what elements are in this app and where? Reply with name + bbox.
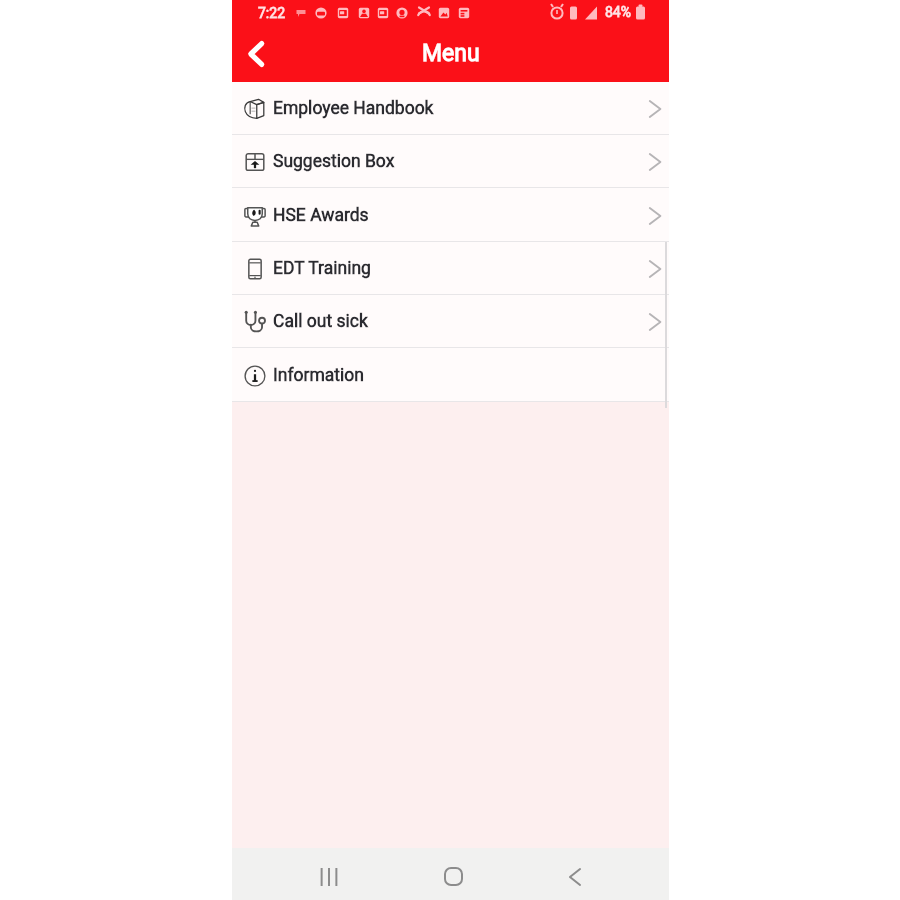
- staticText: 7:22: [258, 5, 285, 21]
- staticText: 84%: [605, 4, 631, 20]
- button[interactable]: Information: [232, 349, 669, 402]
- button[interactable]: Home: [429, 852, 477, 900]
- button[interactable]: Employee Handbook: [232, 82, 669, 135]
- button[interactable]: Back: [551, 853, 599, 900]
- button[interactable]: Suggestion Box: [232, 135, 669, 188]
- button[interactable]: Back: [232, 30, 280, 78]
- staticText: Call out sick: [273, 311, 368, 332]
- button[interactable]: Call out sick: [232, 295, 669, 348]
- staticText: Menu: [422, 40, 480, 67]
- staticText: HSE Awards: [273, 205, 369, 226]
- button[interactable]: HSE Awards: [232, 189, 669, 242]
- staticText: Employee Handbook: [273, 98, 434, 119]
- staticText: EDT Training: [273, 258, 371, 279]
- button[interactable]: Recent apps: [305, 853, 353, 900]
- staticText: Suggestion Box: [273, 151, 395, 172]
- button[interactable]: EDT Training: [232, 242, 669, 295]
- staticText: Information: [273, 365, 364, 386]
